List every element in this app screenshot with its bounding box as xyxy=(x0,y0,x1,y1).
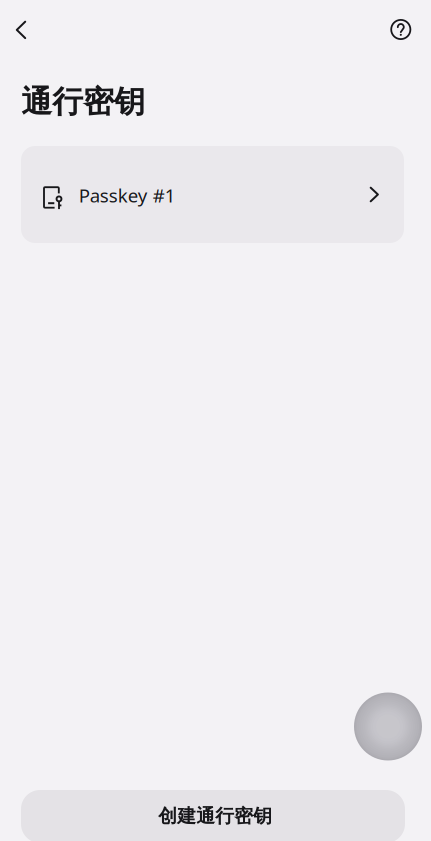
button[interactable]: Passkey #1 xyxy=(21,146,404,243)
button[interactable]: Back xyxy=(0,8,43,52)
staticText: 通行密钥 xyxy=(21,83,145,121)
button[interactable]: 创建通行密钥 xyxy=(21,790,405,841)
button[interactable]: Help xyxy=(379,7,423,51)
staticText: 创建通行密钥 xyxy=(158,804,272,827)
staticText: Passkey #1 xyxy=(79,183,176,208)
